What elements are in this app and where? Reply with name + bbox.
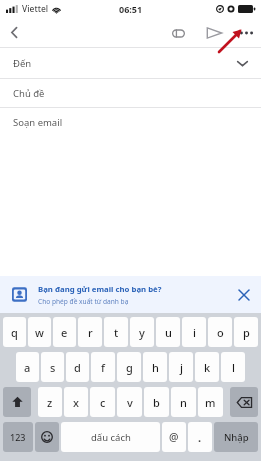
button[interactable]: q [3, 317, 26, 347]
staticText: f [101, 360, 105, 375]
staticText: 123 [10, 431, 26, 443]
button[interactable]: l [221, 352, 245, 382]
button[interactable]: a [16, 352, 39, 382]
button[interactable]: t [104, 317, 128, 347]
button[interactable]: Nhập [214, 422, 258, 452]
button[interactable]: j [169, 352, 193, 382]
button[interactable]: e [53, 317, 76, 347]
button[interactable]: y [130, 317, 154, 347]
staticText: q [11, 325, 18, 340]
staticText: Nhập [224, 431, 249, 444]
button[interactable]: s [41, 352, 64, 382]
staticText: @ [169, 430, 179, 444]
staticText: y [139, 325, 145, 340]
staticText: i [193, 325, 196, 340]
button[interactable]: b [144, 387, 169, 417]
staticText: t [114, 325, 119, 340]
button[interactable]: Bạn đang gửi email cho bạn bè? [0, 276, 261, 313]
button[interactable]: p [234, 317, 258, 347]
staticText: g [126, 360, 133, 375]
staticText: Cho phép đề xuất từ danh bạ [38, 297, 129, 306]
button[interactable]: z [38, 387, 62, 417]
button[interactable]: n [171, 387, 196, 417]
button[interactable]: i [182, 317, 206, 347]
button[interactable]: More options [233, 20, 259, 46]
staticText: c [100, 395, 106, 410]
staticText: l [232, 360, 235, 375]
staticText: h [152, 360, 159, 375]
staticText: Bạn đang gửi email cho bạn bè? [38, 284, 162, 295]
button[interactable]: g [117, 352, 141, 382]
staticText: k [204, 360, 211, 375]
button[interactable]: f [91, 352, 115, 382]
button[interactable]: . [188, 422, 212, 452]
button[interactable]: u [156, 317, 180, 347]
staticText: j [180, 360, 183, 375]
button[interactable]: x [64, 387, 88, 417]
button[interactable]: Attach [165, 20, 191, 46]
button[interactable]: d [66, 352, 89, 382]
button[interactable]: w [28, 317, 51, 347]
staticText: x [73, 395, 79, 410]
staticText: . [198, 430, 202, 445]
staticText: o [217, 325, 224, 340]
staticText: u [165, 325, 172, 340]
button[interactable]: Emoji [35, 422, 59, 452]
button[interactable]: Expand recipients [233, 54, 251, 72]
staticText: b [153, 395, 160, 410]
staticText: z [47, 395, 53, 410]
staticText: r [88, 325, 93, 340]
staticText: Soạn email [13, 116, 63, 129]
button[interactable]: Shift [3, 387, 31, 417]
staticText: w [35, 325, 44, 340]
button[interactable]: c [90, 387, 115, 417]
staticText: dấu cách [91, 431, 131, 444]
staticText: 06:51 [119, 3, 143, 15]
staticText: d [74, 360, 81, 375]
button[interactable]: h [143, 352, 167, 382]
button[interactable]: Chủ đề [0, 79, 261, 107]
staticText: Chủ đề [13, 87, 45, 100]
button[interactable]: Soạn email [0, 108, 261, 136]
button[interactable]: o [208, 317, 232, 347]
button[interactable]: Send [201, 20, 227, 46]
staticText: Đến [13, 57, 32, 70]
button[interactable]: Dismiss [233, 284, 255, 306]
staticText: e [61, 325, 68, 340]
button[interactable]: r [78, 317, 102, 347]
staticText: Viettel [22, 3, 49, 15]
button[interactable]: @ [162, 422, 186, 452]
staticText: p [243, 325, 250, 340]
button[interactable]: m [198, 387, 223, 417]
button[interactable]: k [195, 352, 219, 382]
staticText: s [50, 360, 56, 375]
button[interactable]: Đến [0, 48, 261, 78]
button[interactable]: Backspace [230, 387, 258, 417]
staticText: a [24, 360, 31, 375]
button[interactable]: Back [0, 18, 29, 47]
button[interactable]: 123 [3, 422, 33, 452]
staticText: v [127, 395, 133, 410]
staticText: m [205, 395, 216, 410]
staticText: n [180, 395, 187, 410]
button[interactable]: v [117, 387, 142, 417]
button[interactable]: dấu cách [61, 422, 160, 452]
